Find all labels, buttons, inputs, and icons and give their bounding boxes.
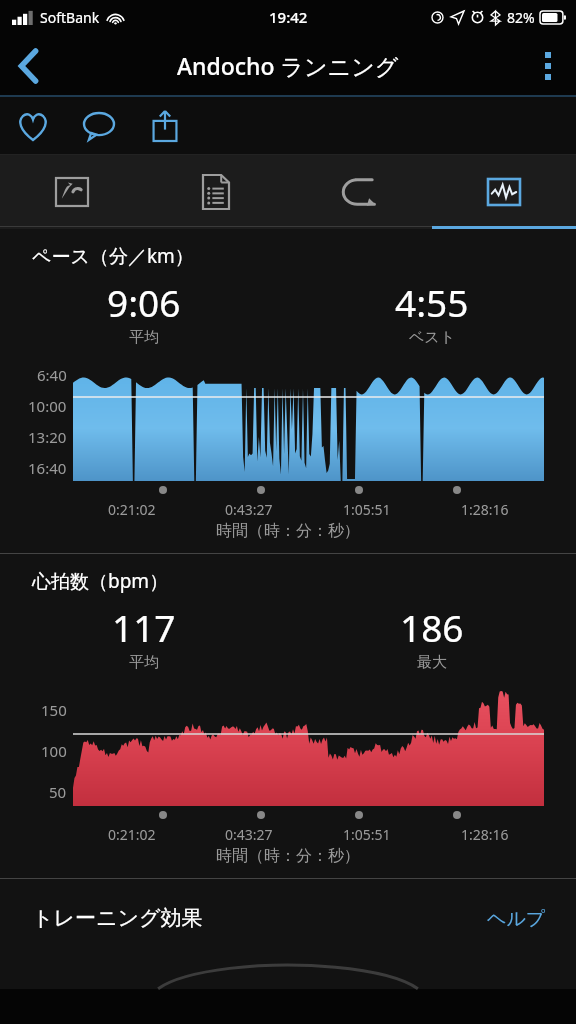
button[interactable]: Back [0,38,56,94]
staticText: 150 [41,700,67,720]
staticText: 19:42 [269,7,308,27]
staticText: 1:05:51 [343,500,391,519]
staticText: 最大 [417,653,447,672]
button[interactable]: More options [520,38,576,94]
staticText: 1:28:16 [461,825,509,844]
staticText: SoftBank [40,8,100,27]
staticText: 16:40 [28,458,67,478]
staticText: 1:28:16 [461,500,509,519]
staticText: 13:20 [28,427,67,447]
staticText: 平均 [129,653,159,672]
button[interactable]: Comment [66,97,132,155]
staticText: ヘルプ [487,907,546,931]
button[interactable]: ヘルプ [487,907,546,931]
button[interactable]: Map [0,155,144,229]
staticText: 平均 [129,328,159,347]
staticText: 50 [49,782,67,802]
staticText: Andocho ランニング [177,50,399,81]
staticText: ペース（分／km） [32,243,194,269]
button[interactable]: Charts [432,155,576,229]
staticText: トレーニング効果 [32,905,203,931]
staticText: 100 [41,741,67,761]
button[interactable]: Details [144,155,288,229]
staticText: 9:06 [107,277,181,327]
button[interactable]: Share [132,97,198,155]
staticText: 6:40 [37,365,67,385]
staticText: 4:55 [395,277,469,327]
button[interactable]: Laps [288,155,432,229]
staticText: 0:21:02 [108,500,156,519]
staticText: 心拍数（bpm） [32,568,169,594]
button[interactable]: Like [0,97,66,155]
staticText: 186 [400,602,464,652]
staticText: 時間（時：分：秒） [0,846,576,866]
staticText: 0:43:27 [225,500,273,519]
staticText: 0:43:27 [225,825,273,844]
staticText: 1:05:51 [343,825,391,844]
staticText: ベスト [409,328,456,347]
staticText: 117 [112,602,176,652]
staticText: 82% [507,8,535,27]
staticText: 0:21:02 [108,825,156,844]
staticText: 時間（時：分：秒） [0,521,576,541]
staticText: 10:00 [28,396,67,416]
